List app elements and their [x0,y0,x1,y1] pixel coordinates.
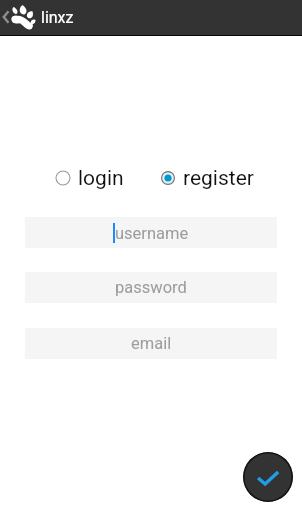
button[interactable]: login [55,166,124,191]
staticText: password [115,278,187,297]
button[interactable]: email [25,328,277,359]
staticText: login [78,166,124,191]
button[interactable]: username [25,217,277,248]
staticText: register [183,166,254,191]
staticText: email [131,334,172,353]
button[interactable]: Back [0,0,302,35]
button[interactable]: password [25,272,277,303]
button[interactable]: register [160,166,254,191]
staticText: username [115,224,189,243]
staticText: linxz [41,8,74,27]
button[interactable]: Confirm [243,452,293,502]
